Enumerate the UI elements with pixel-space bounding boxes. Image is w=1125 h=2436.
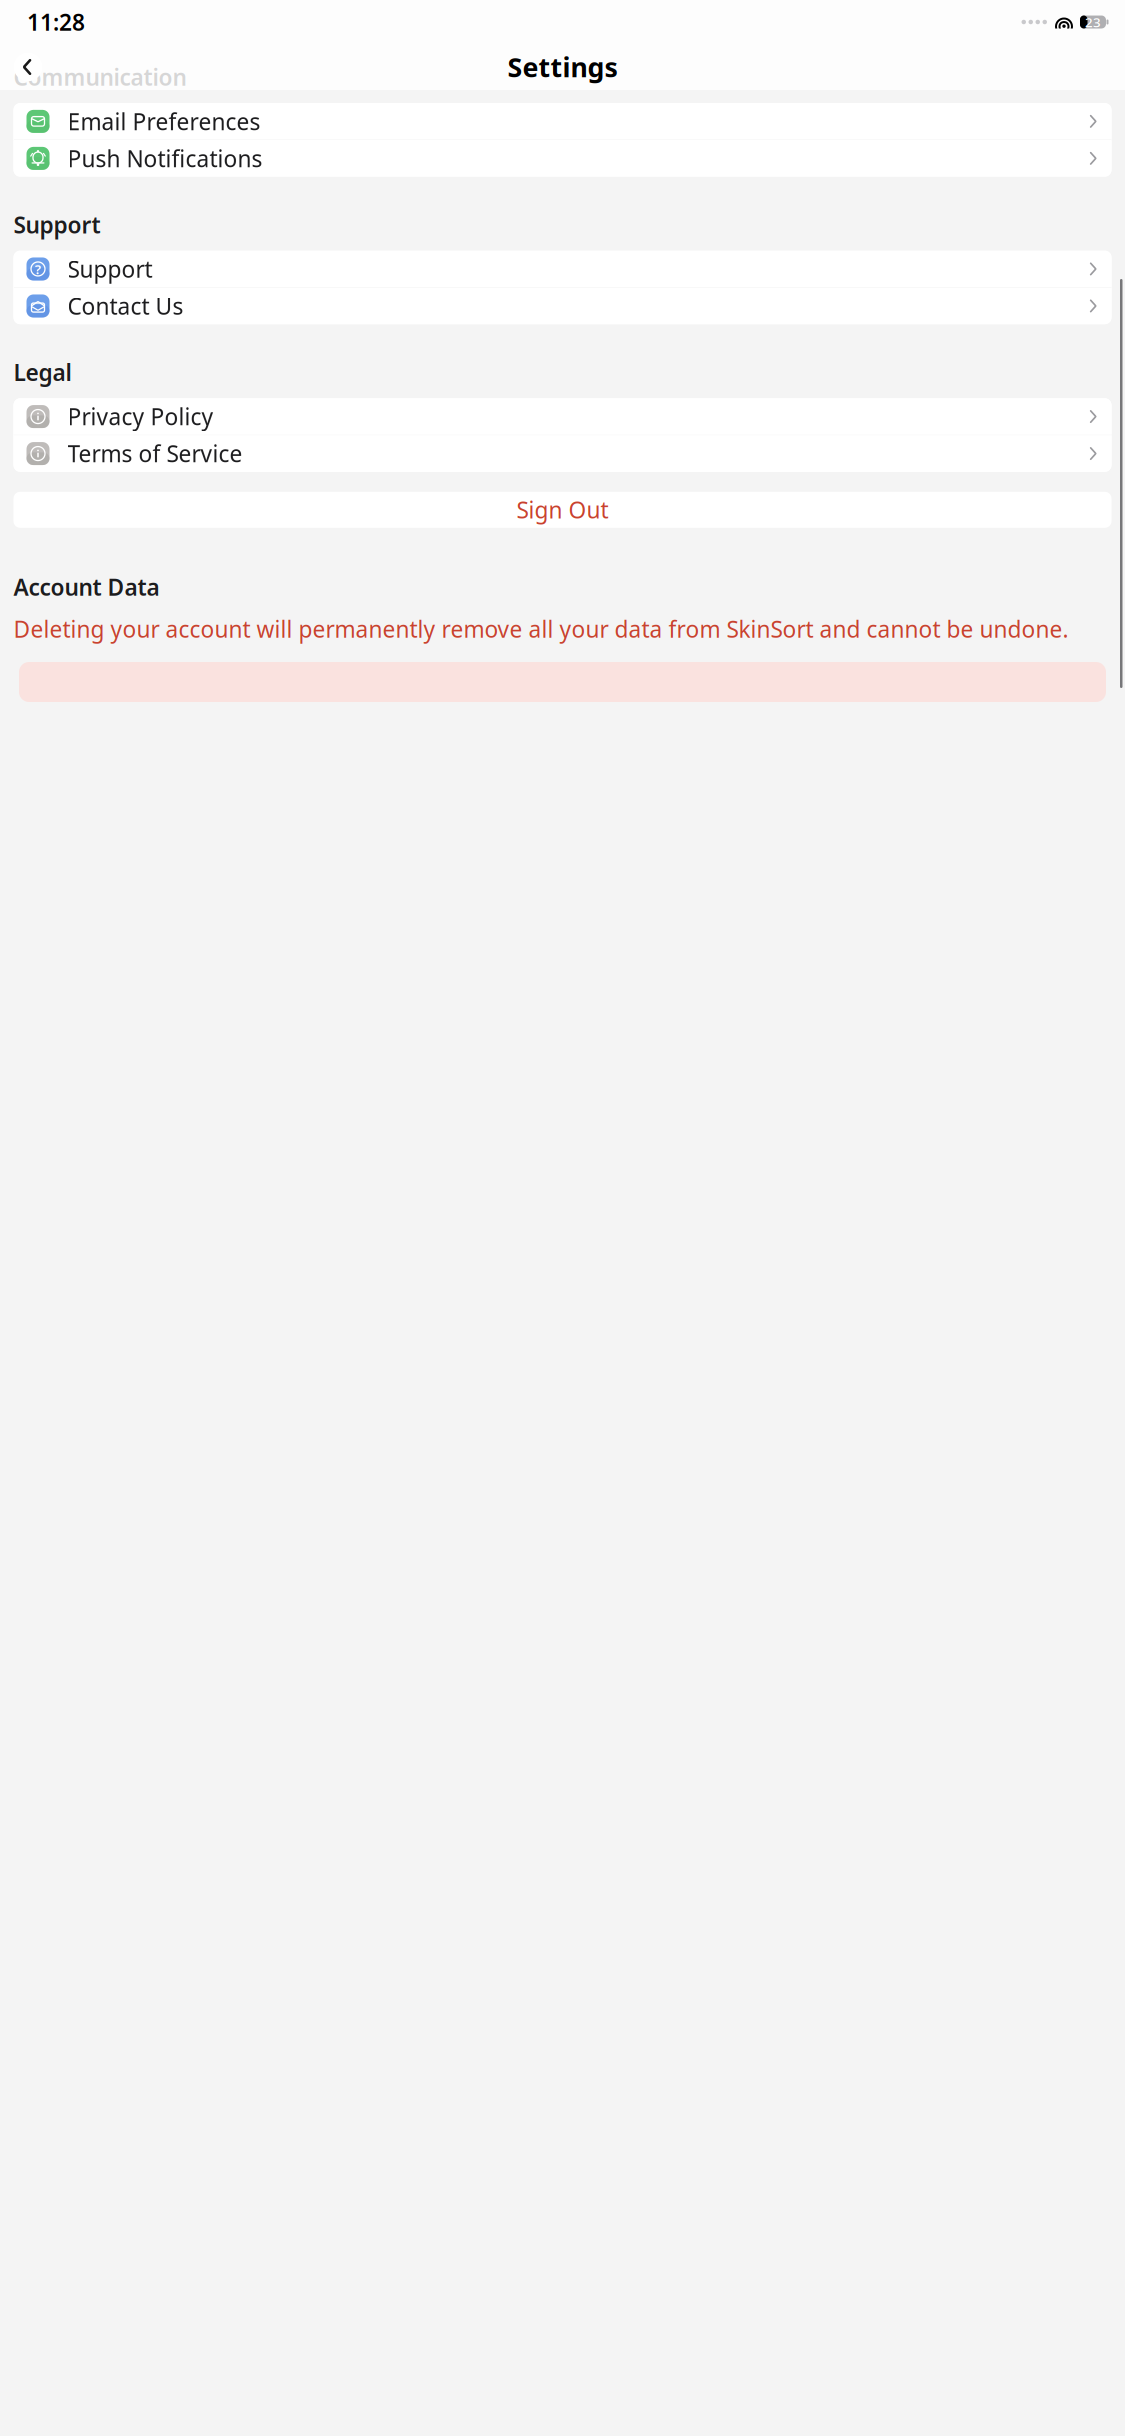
- button[interactable]: Push Notifications: [13, 140, 1111, 177]
- staticText: Settings: [507, 49, 617, 85]
- button[interactable]: Contact Us: [13, 288, 1111, 324]
- staticText: 23: [1085, 13, 1101, 31]
- staticText: Account Data: [13, 572, 159, 602]
- staticText: Deleting your account will permanently r…: [13, 614, 1068, 644]
- staticText: Contact Us: [67, 291, 183, 321]
- staticText: Push Notifications: [67, 143, 262, 173]
- staticText: Privacy Policy: [67, 401, 213, 432]
- button[interactable]: Terms of Service: [13, 435, 1111, 472]
- button[interactable]: Sign Out: [13, 492, 1111, 528]
- button[interactable]: Back: [11, 50, 45, 84]
- staticText: Sign Out: [516, 495, 608, 525]
- staticText: Email Preferences: [67, 106, 260, 136]
- staticText: ?: [35, 260, 41, 278]
- button[interactable]: Email Preferences: [13, 103, 1111, 140]
- button[interactable]: ?: [13, 251, 1111, 287]
- staticText: Support: [13, 210, 100, 240]
- staticText: Support: [67, 254, 152, 284]
- staticText: 11:28: [27, 7, 85, 37]
- staticText: Legal: [13, 357, 71, 387]
- staticText: Communication: [13, 62, 186, 92]
- staticText: Terms of Service: [67, 438, 242, 469]
- button[interactable]: Privacy Policy: [13, 398, 1111, 435]
